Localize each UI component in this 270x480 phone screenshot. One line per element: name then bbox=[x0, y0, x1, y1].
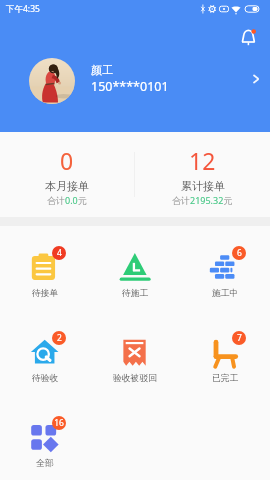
button[interactable]: Notifications bbox=[239, 28, 259, 48]
button[interactable]: 7 bbox=[180, 331, 270, 384]
button[interactable]: 待施工 bbox=[90, 246, 180, 299]
button[interactable]: 4 bbox=[0, 246, 90, 299]
staticText: 累计接单 bbox=[181, 179, 225, 193]
staticText: 16 bbox=[54, 417, 64, 429]
button[interactable]: 0 bbox=[0, 132, 134, 217]
staticText: 7 bbox=[237, 332, 242, 344]
staticText: 下午4:35 bbox=[6, 3, 40, 15]
staticText: 颜工 bbox=[91, 63, 113, 77]
staticText: 2 bbox=[57, 332, 62, 344]
button[interactable]: 颜工 bbox=[0, 49, 270, 109]
staticText: 验收被驳回 bbox=[113, 373, 157, 384]
staticText: 待接单 bbox=[32, 288, 59, 299]
button[interactable]: 2 bbox=[0, 331, 90, 384]
staticText: 待验收 bbox=[32, 373, 59, 384]
staticText: 4 bbox=[57, 247, 62, 259]
staticText: 12 bbox=[189, 145, 216, 176]
staticText: 合计2195.32元 bbox=[172, 194, 233, 206]
button[interactable]: 12 bbox=[135, 132, 270, 217]
staticText: 待施工 bbox=[122, 288, 149, 299]
staticText: 0 bbox=[60, 145, 74, 176]
staticText: 6 bbox=[237, 247, 242, 259]
staticText: 本月接单 bbox=[45, 179, 89, 193]
button[interactable]: 16 bbox=[0, 416, 90, 469]
button[interactable]: 6 bbox=[180, 246, 270, 299]
staticText: 全部 bbox=[36, 458, 54, 469]
staticText: 150****0101 bbox=[91, 78, 169, 95]
staticText: 已完工 bbox=[212, 373, 239, 384]
staticText: 合计0.0元 bbox=[47, 194, 87, 206]
staticText: 施工中 bbox=[212, 288, 239, 299]
button[interactable]: 验收被驳回 bbox=[90, 331, 180, 384]
